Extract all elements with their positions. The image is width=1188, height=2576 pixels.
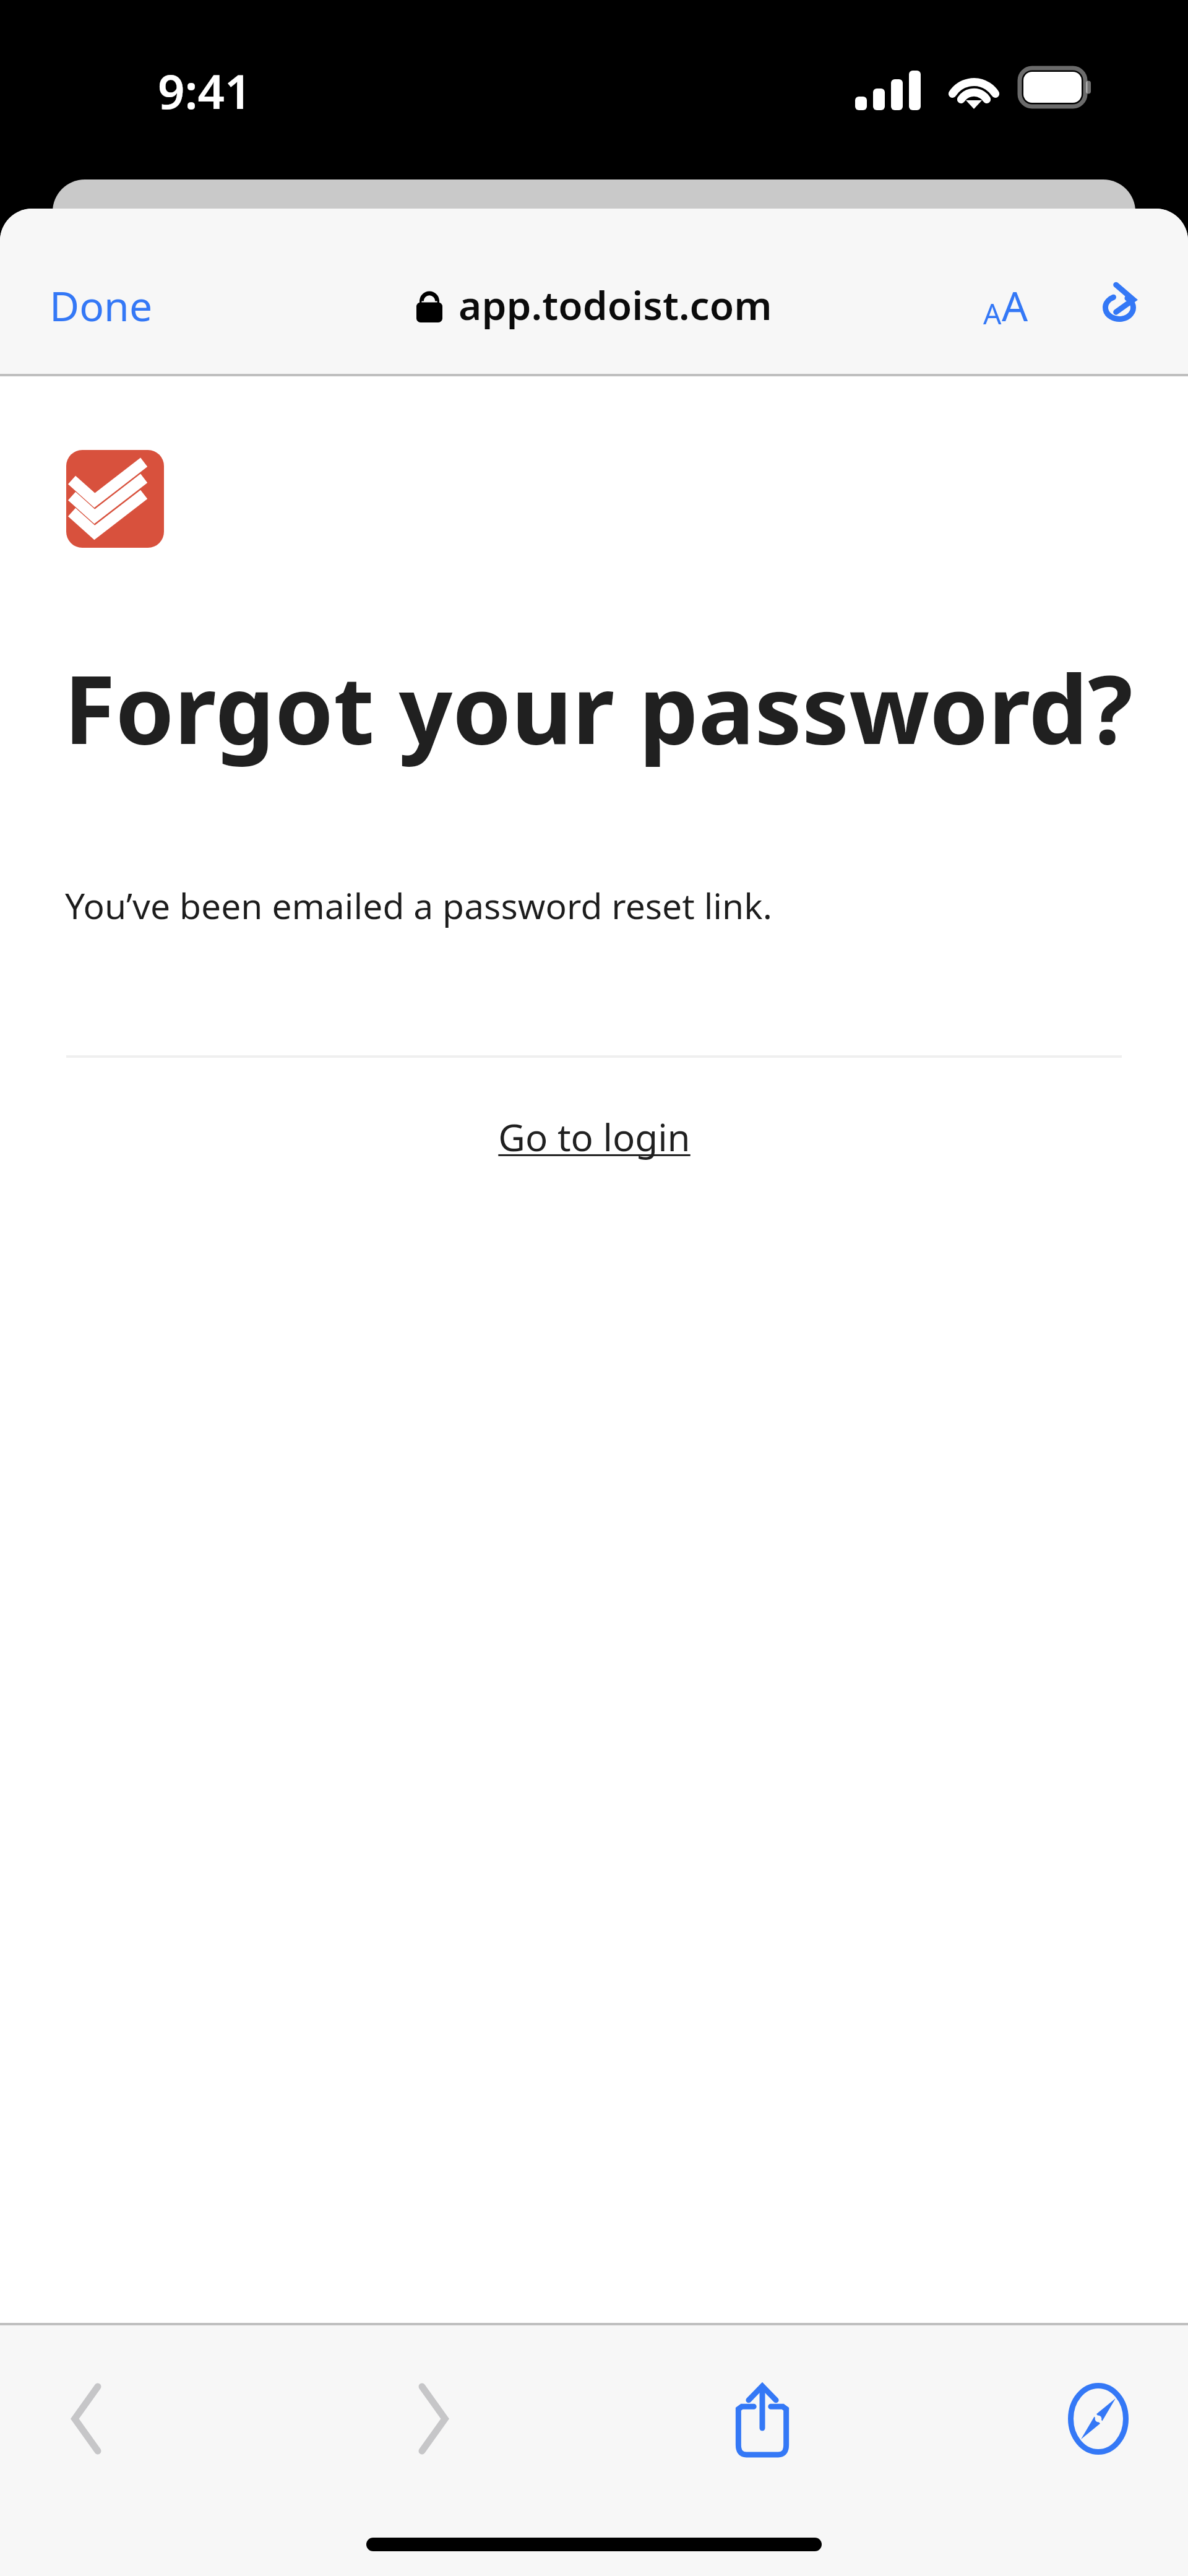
staticText: 9:41 — [158, 59, 252, 123]
button[interactable]: Open in Safari — [1046, 2366, 1151, 2471]
staticText: Go to login — [498, 1112, 691, 1162]
button[interactable]: Text size options — [971, 265, 1041, 345]
button[interactable]: Reload page — [1088, 274, 1151, 337]
staticText: A — [1002, 277, 1028, 333]
staticText: A — [983, 294, 1002, 333]
staticText: You’ve been emailed a password reset lin… — [65, 881, 773, 930]
button[interactable]: Done — [0, 265, 202, 345]
staticText: Forgot your password? — [64, 644, 1133, 772]
button[interactable]: app.todoist.com — [402, 269, 787, 340]
button[interactable]: Go to login — [473, 1096, 715, 1178]
button[interactable]: Back — [34, 2366, 139, 2471]
staticText: Done — [49, 277, 153, 333]
staticText: app.todoist.com — [458, 278, 772, 332]
button[interactable]: Forward — [381, 2366, 486, 2471]
button[interactable]: Share — [710, 2366, 815, 2471]
